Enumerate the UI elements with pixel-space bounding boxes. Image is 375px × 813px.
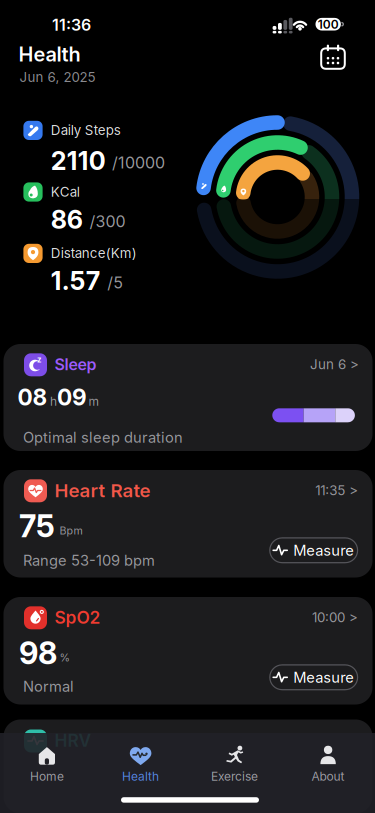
staticText: 86 xyxy=(51,205,83,235)
staticText: Measure xyxy=(293,542,354,559)
button[interactable]: Details xyxy=(315,483,358,498)
staticText: Measure xyxy=(293,669,354,686)
staticText: z xyxy=(37,355,42,364)
staticText: Health xyxy=(18,42,80,66)
staticText: 11:36 xyxy=(52,16,91,34)
staticText: Exercise xyxy=(211,769,258,784)
staticText: 2110 xyxy=(51,146,106,176)
button[interactable]: Heart Rate xyxy=(3,470,372,577)
staticText: Jun 6, 2025 xyxy=(19,69,95,85)
staticText: 09 xyxy=(57,384,87,410)
button[interactable]: z xyxy=(3,344,372,451)
staticText: 100 xyxy=(318,17,339,31)
staticText: % xyxy=(59,651,69,664)
staticText: About xyxy=(312,769,345,784)
staticText: Health xyxy=(122,769,159,784)
button[interactable]: About xyxy=(285,744,371,788)
staticText: Bpm xyxy=(59,524,82,537)
staticText: KCal xyxy=(51,184,80,200)
staticText: HRV xyxy=(54,730,91,751)
staticText: Home xyxy=(30,769,64,784)
staticText: Heart Rate xyxy=(54,479,150,501)
staticText: 08 xyxy=(17,384,47,410)
staticText: Distance(Km) xyxy=(51,245,137,261)
staticText: 75 xyxy=(19,508,55,544)
staticText: /300 xyxy=(89,212,125,231)
button[interactable]: Calendar xyxy=(320,44,346,70)
staticText: Jun 6 > xyxy=(310,357,359,372)
staticText: 10:00 > xyxy=(312,610,358,625)
staticText: 1.57 xyxy=(51,266,101,296)
staticText: /5 xyxy=(107,273,123,292)
staticText: SpO2 xyxy=(54,607,100,628)
staticText: /10000 xyxy=(112,153,165,172)
button[interactable]: Exercise xyxy=(191,744,277,788)
staticText: Optimal sleep duration xyxy=(23,429,183,446)
button[interactable]: HRV xyxy=(3,719,372,813)
button[interactable]: Measure xyxy=(269,537,358,563)
staticText: Normal xyxy=(23,678,74,695)
staticText: m xyxy=(88,394,99,409)
button[interactable]: Details xyxy=(312,610,358,625)
staticText: Sleep xyxy=(54,355,96,374)
button[interactable]: Details xyxy=(310,357,359,372)
staticText: 11:35 > xyxy=(315,483,358,498)
staticText: 98 xyxy=(19,635,57,671)
staticText: Range 53-109 bpm xyxy=(23,552,155,569)
button[interactable]: Measure xyxy=(269,664,358,690)
button[interactable]: Health xyxy=(98,744,184,788)
button[interactable]: SpO2 xyxy=(3,597,372,704)
staticText: Daily Steps xyxy=(51,122,121,138)
staticText: h xyxy=(50,394,57,409)
button[interactable]: Home xyxy=(4,744,90,788)
